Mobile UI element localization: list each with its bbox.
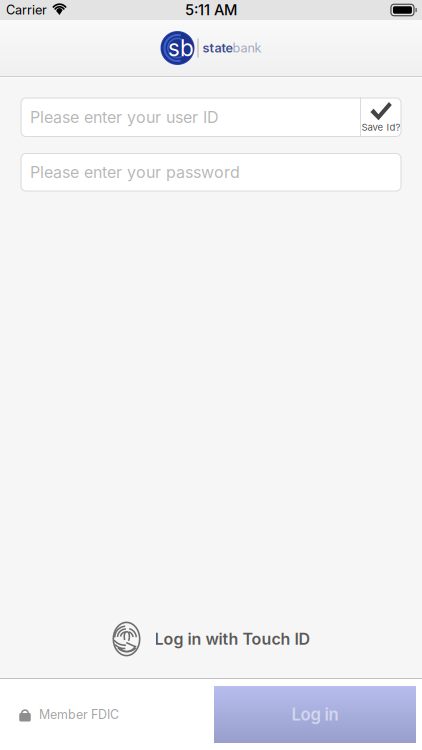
staticText: state (202, 40, 232, 56)
staticText: Save Id? (361, 121, 400, 133)
staticText: Member FDIC (39, 707, 119, 722)
staticText: 5:11 AM (185, 1, 237, 19)
staticText: sb (168, 34, 194, 62)
staticText: Carrier (6, 2, 47, 18)
staticText: Log in (291, 704, 338, 725)
staticText: Please enter your password (30, 163, 240, 182)
button[interactable]: Log in (214, 686, 416, 743)
staticText: bank (232, 40, 261, 56)
button[interactable]: Save ID (361, 97, 401, 137)
staticText: Log in with Touch ID (154, 629, 310, 649)
button[interactable]: Log in with Touch ID (0, 600, 422, 678)
staticText: Please enter your user ID (30, 108, 219, 127)
